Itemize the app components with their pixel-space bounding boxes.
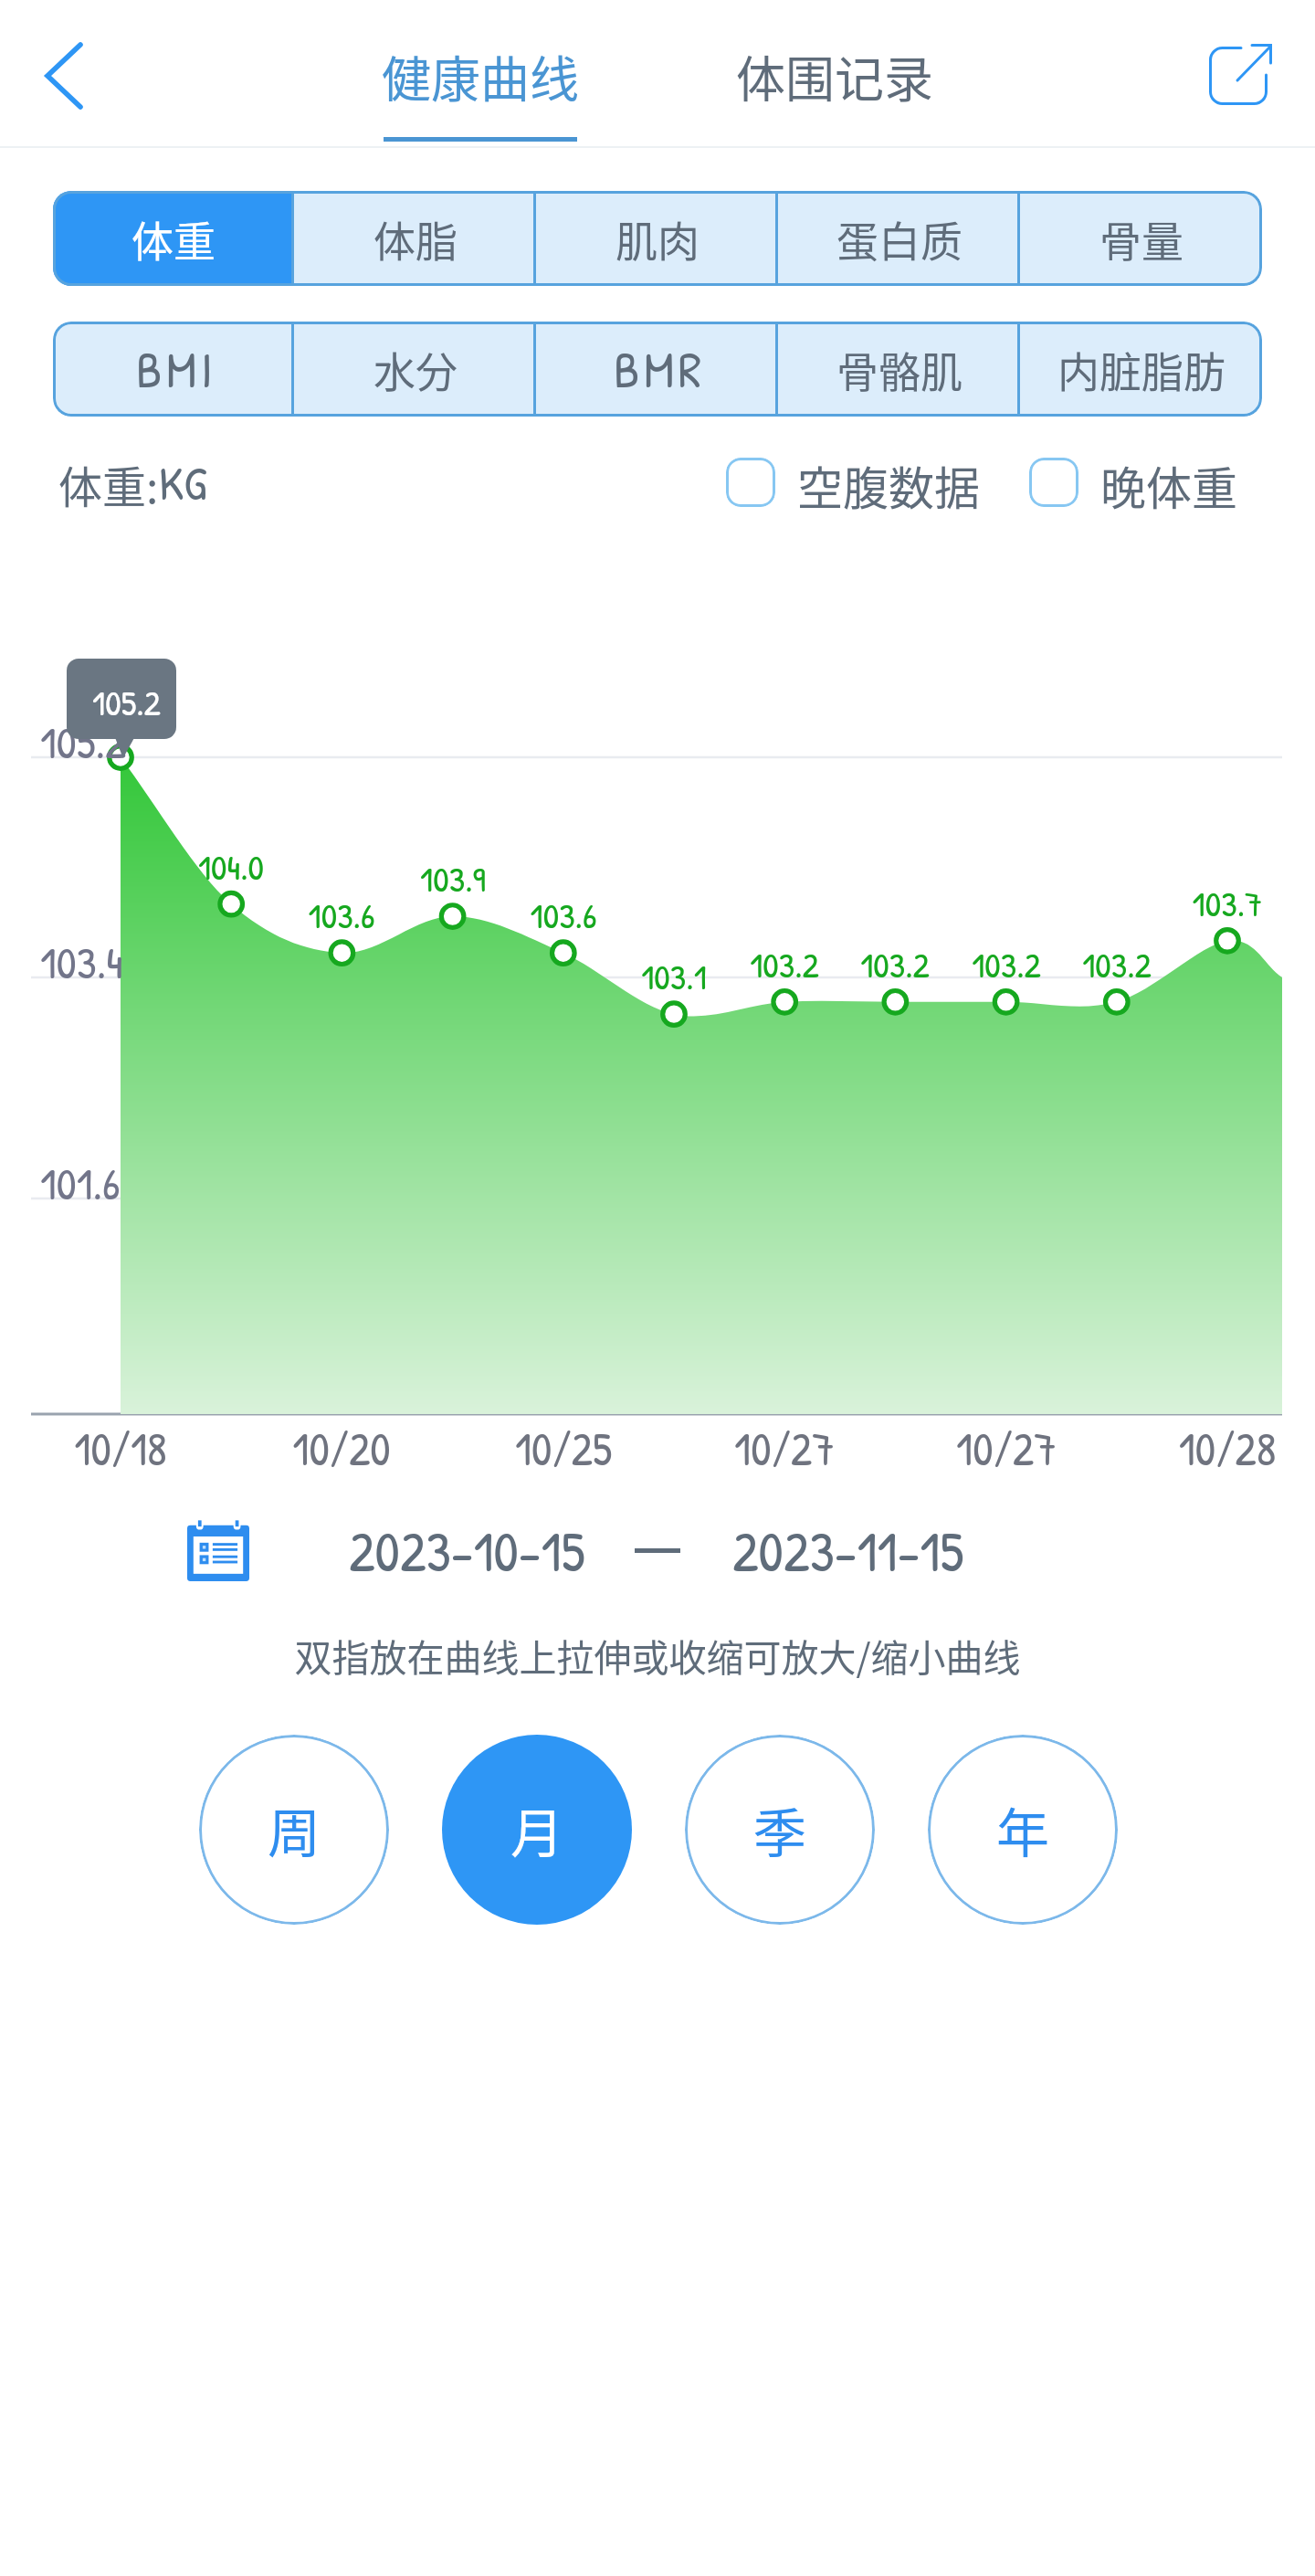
staticText: 103.1 (610, 952, 738, 1000)
staticText: 103.7 (1163, 879, 1291, 927)
staticText: 骨骼肌 (836, 339, 963, 400)
staticText: 周 (268, 1791, 321, 1868)
staticText: 101.6 (40, 1153, 121, 1213)
staticText: 水分 (373, 339, 458, 400)
button[interactable]: 骨量 (1020, 191, 1262, 286)
staticText: 骨量 (1099, 208, 1183, 269)
staticText: 103.2 (942, 940, 1070, 988)
button[interactable]: 健康曲线 (365, 40, 595, 146)
button[interactable]: 体脂 (294, 191, 536, 286)
staticText: 105.2 (92, 678, 161, 726)
staticText: 体围记录 (736, 40, 933, 111)
button[interactable]: Back (13, 25, 115, 127)
staticText: 103.9 (389, 854, 517, 903)
button[interactable]: BMR (536, 322, 778, 417)
staticText: 103.2 (721, 940, 848, 988)
button[interactable]: 骨骼肌 (778, 322, 1020, 417)
staticText: 蛋白质 (836, 208, 963, 269)
staticText: KG (159, 450, 207, 511)
button[interactable]: 体围记录 (720, 40, 950, 122)
button[interactable]: 周 (199, 1735, 389, 1925)
button[interactable]: 空腹数据 (726, 452, 980, 512)
staticText: 103.6 (278, 891, 405, 939)
staticText: 105.2 (40, 712, 126, 772)
button[interactable]: 肌肉 (536, 191, 778, 286)
staticText: 季 (753, 1791, 807, 1868)
staticText: 104.0 (167, 842, 295, 891)
staticText: 10/28 (1145, 1418, 1310, 1480)
button[interactable]: 晚体重 (1029, 452, 1237, 512)
staticText: 月 (510, 1791, 564, 1868)
staticText: 10/20 (259, 1418, 424, 1480)
staticText: 2023-10-15 (349, 1513, 585, 1589)
button[interactable]: 月 (442, 1735, 632, 1925)
staticText: 体脂 (373, 208, 458, 269)
staticText: 体重 (131, 208, 216, 269)
staticText: 10/25 (481, 1418, 646, 1480)
staticText: BMI (136, 334, 217, 404)
button[interactable]: 蛋白质 (778, 191, 1020, 286)
staticText: 双指放在曲线上拉伸或收缩可放大/缩小曲线 (0, 1628, 1315, 1682)
button[interactable]: 水分 (294, 322, 536, 417)
staticText: 健康曲线 (382, 40, 579, 111)
staticText: 103.2 (831, 940, 959, 988)
staticText: 空腹数据 (797, 452, 980, 512)
button[interactable]: 体重 (53, 191, 294, 286)
button[interactable]: 2023-10-15 (187, 1509, 964, 1591)
staticText: 103.2 (1053, 940, 1181, 988)
staticText: 2023-11-15 (732, 1513, 964, 1589)
staticText: 肌肉 (615, 208, 700, 269)
staticText: 年 (996, 1791, 1050, 1868)
staticText: 10/18 (38, 1418, 203, 1480)
button[interactable]: Share (1187, 18, 1297, 128)
staticText: 内脏脂肪 (1057, 339, 1226, 400)
staticText: 10/27 (924, 1418, 1089, 1480)
button[interactable]: BMI (53, 322, 294, 417)
button[interactable]: 年 (928, 1735, 1118, 1925)
staticText: 体重: (58, 452, 159, 512)
staticText: 10/27 (702, 1418, 867, 1480)
button[interactable]: 内脏脂肪 (1020, 322, 1262, 417)
staticText: BMR (614, 334, 706, 404)
staticText: 103.4 (40, 932, 123, 992)
staticText: 103.6 (500, 891, 627, 939)
staticText: 晚体重 (1100, 452, 1237, 512)
button[interactable]: 季 (685, 1735, 875, 1925)
